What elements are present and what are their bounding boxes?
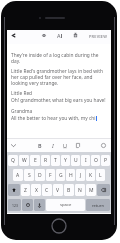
- button[interactable]: T: [51, 155, 60, 166]
- button[interactable]: C: [42, 184, 52, 196]
- button[interactable]: H: [66, 169, 75, 181]
- staticText: PREVIEW: [89, 34, 108, 39]
- staticText: P: [104, 157, 108, 164]
- button[interactable]: D: [35, 169, 45, 181]
- button[interactable]: O: [91, 155, 100, 166]
- button[interactable]: A: [13, 169, 23, 181]
- staticText: Oh! grandmother, what big ears you have!: [11, 97, 106, 104]
- button[interactable]: More options: [98, 138, 108, 152]
- button[interactable]: L: [96, 169, 105, 181]
- staticText: W: [22, 157, 27, 164]
- button[interactable]: Home: [50, 217, 68, 235]
- staticText: L: [99, 172, 102, 179]
- staticText: R: [44, 157, 48, 164]
- staticText: Little Red's grandmother lays in bed wit…: [11, 68, 107, 86]
- staticText: X: [35, 187, 38, 194]
- staticText: All the better to hear you with, my chi: [11, 115, 96, 122]
- button[interactable]: Comments: [39, 30, 49, 40]
- button[interactable]: N: [75, 184, 85, 196]
- staticText: U: [63, 142, 67, 149]
- button[interactable]: V: [53, 184, 63, 196]
- staticText: S: [28, 172, 31, 179]
- staticText: A: [16, 172, 20, 179]
- button[interactable]: Q: [8, 155, 18, 166]
- button[interactable]: Hide keyboard: [7, 138, 19, 152]
- button[interactable]: J: [76, 169, 85, 181]
- staticText: Q: [11, 157, 15, 164]
- button[interactable]: G: [56, 169, 65, 181]
- button[interactable]: Back: [8, 30, 18, 40]
- staticText: G: [59, 172, 63, 179]
- staticText: return: [92, 203, 104, 208]
- staticText: I: [52, 142, 54, 149]
- button[interactable]: Dictate: [34, 199, 45, 211]
- staticText: H: [69, 172, 73, 179]
- button[interactable]: F: [46, 169, 55, 181]
- staticText: B: [67, 187, 71, 194]
- button[interactable]: M: [86, 184, 96, 196]
- button[interactable]: U: [71, 155, 80, 166]
- button[interactable]: S: [24, 169, 34, 181]
- button[interactable]: X: [31, 184, 41, 196]
- staticText: Grandma: [11, 108, 33, 115]
- staticText: D: [38, 172, 42, 179]
- staticText: They're inside of a log cabin during the…: [11, 52, 107, 64]
- button[interactable]: P: [101, 155, 110, 166]
- button[interactable]: Note: [73, 138, 83, 152]
- staticText: J: [80, 172, 82, 179]
- button[interactable]: U: [61, 138, 69, 152]
- button[interactable]: I: [49, 138, 57, 152]
- button[interactable]: PREVIEW: [88, 31, 108, 41]
- button[interactable]: K: [86, 169, 95, 181]
- button[interactable]: R: [41, 155, 50, 166]
- staticText: T: [54, 157, 57, 164]
- staticText: M: [89, 187, 94, 194]
- button[interactable]: Shift: [8, 184, 20, 196]
- button[interactable]: Backspace: [97, 184, 110, 196]
- staticText: Y: [64, 157, 67, 164]
- staticText: C: [45, 187, 49, 194]
- button[interactable]: E: [30, 155, 40, 166]
- button[interactable]: Z: [21, 184, 30, 196]
- staticText: F: [49, 172, 52, 179]
- staticText: A: [57, 32, 61, 39]
- button[interactable]: space: [46, 199, 85, 211]
- staticText: I: [85, 157, 87, 164]
- staticText: N: [78, 187, 82, 194]
- staticText: E: [34, 157, 37, 164]
- button[interactable]: B: [64, 184, 74, 196]
- staticText: U: [74, 157, 78, 164]
- staticText: space: [60, 202, 72, 208]
- staticText: 123: [12, 203, 18, 208]
- button[interactable]: B: [36, 138, 44, 152]
- staticText: O: [94, 157, 98, 164]
- button[interactable]: Y: [61, 155, 70, 166]
- button[interactable]: Share: [70, 30, 80, 40]
- button[interactable]: Emoji: [22, 199, 33, 211]
- staticText: Z: [24, 187, 27, 194]
- staticText: K: [89, 172, 93, 179]
- button[interactable]: W: [19, 155, 29, 166]
- button[interactable]: I: [81, 155, 90, 166]
- staticText: Little Red: [11, 90, 33, 97]
- staticText: B: [38, 142, 42, 149]
- button[interactable]: Numbers: [8, 199, 21, 211]
- staticText: V: [56, 187, 60, 194]
- button[interactable]: Text format: [54, 30, 64, 40]
- button[interactable]: return: [86, 199, 110, 211]
